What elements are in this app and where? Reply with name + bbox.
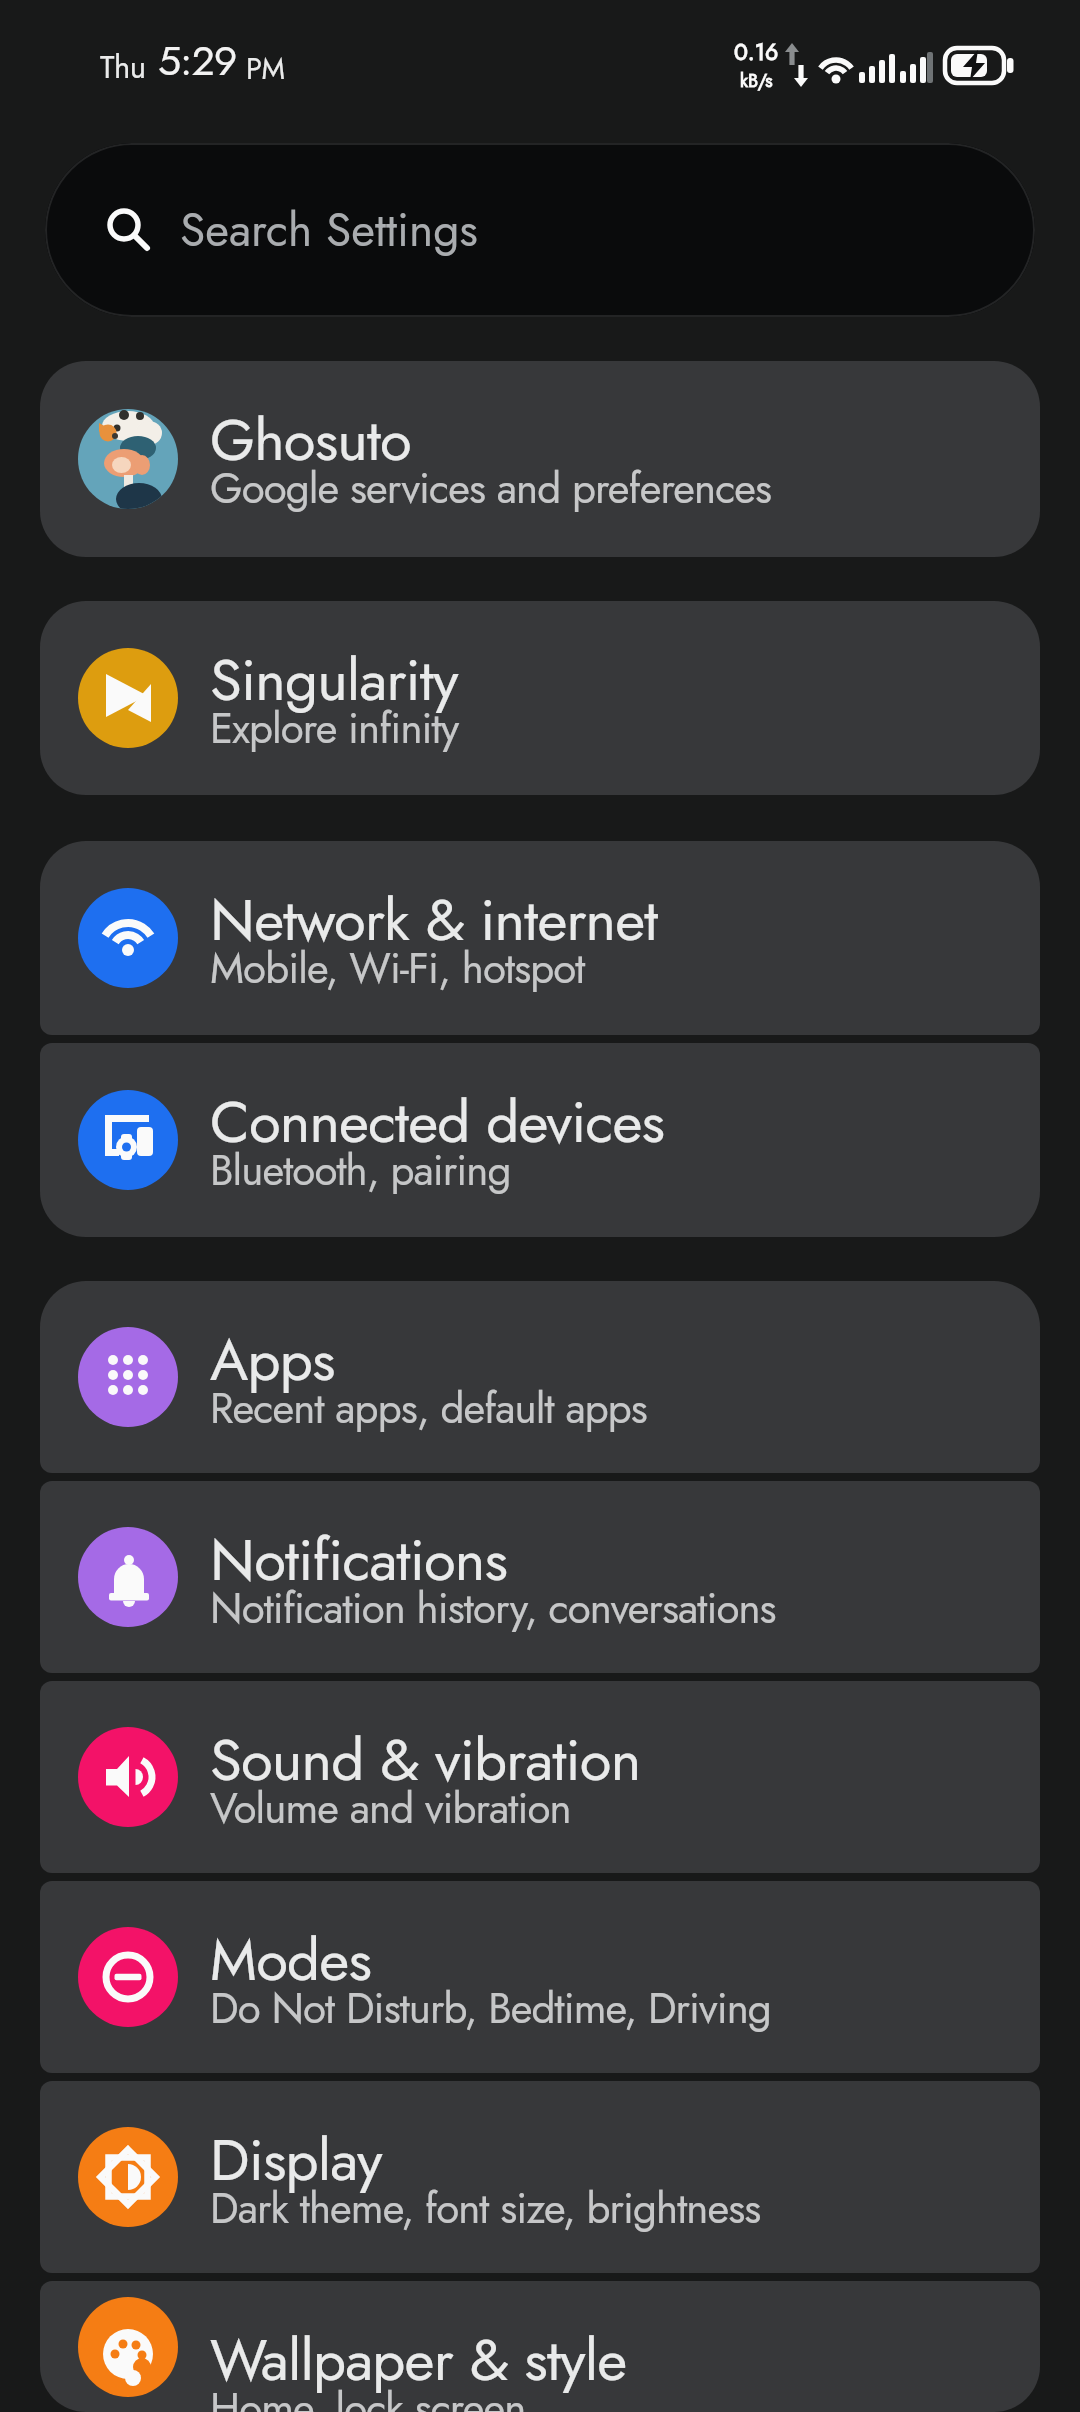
button[interactable]: Sound & vibration	[40, 1681, 1040, 1873]
staticText: Thu	[100, 45, 146, 90]
staticText: Bluetooth, pairing	[210, 1140, 511, 1201]
button[interactable]: Connected devices	[40, 1043, 1040, 1237]
staticText: Sound & vibration	[210, 1718, 641, 1802]
staticText: PM	[246, 48, 285, 90]
staticText: Notifications	[210, 1518, 508, 1602]
button[interactable]: Display	[40, 2081, 1040, 2273]
staticText: Recent apps, default apps	[210, 1378, 647, 1439]
staticText: kB/s	[740, 68, 773, 94]
staticText: Ghosuto	[210, 398, 411, 482]
staticText: Singularity	[210, 638, 458, 722]
button[interactable]: Singularity	[40, 601, 1040, 795]
staticText: Notification history, conversations	[210, 1578, 776, 1639]
staticText: Connected devices	[210, 1080, 665, 1164]
button[interactable]: Modes	[40, 1881, 1040, 2073]
staticText: Volume and vibration	[210, 1778, 571, 1839]
button[interactable]: Ghosuto	[40, 361, 1040, 557]
staticText: Network & internet	[210, 878, 658, 962]
staticText: Display	[210, 2118, 382, 2202]
staticText: 0.16	[734, 35, 779, 68]
button[interactable]: Apps	[40, 1281, 1040, 1473]
button[interactable]: Notifications	[40, 1481, 1040, 1673]
button[interactable]: Network & internet	[40, 841, 1040, 1035]
staticText: Home, lock screen	[210, 2378, 526, 2412]
staticText: Modes	[210, 1918, 371, 2002]
staticText: Google services and preferences	[210, 458, 772, 519]
button[interactable]: Wallpaper & style	[40, 2281, 1040, 2412]
staticText: Dark theme, font size, brightness	[210, 2178, 761, 2239]
button[interactable]: Search Settings	[45, 143, 1035, 317]
staticText: Wallpaper & style	[210, 2318, 627, 2402]
staticText: Do Not Disturb, Bedtime, Driving	[210, 1978, 771, 2039]
staticText: Search Settings	[180, 197, 478, 263]
staticText: Explore infinity	[210, 698, 459, 759]
staticText: Apps	[210, 1318, 335, 1402]
staticText: 5:29	[158, 31, 237, 90]
staticText: Mobile, Wi-Fi, hotspot	[210, 938, 585, 999]
